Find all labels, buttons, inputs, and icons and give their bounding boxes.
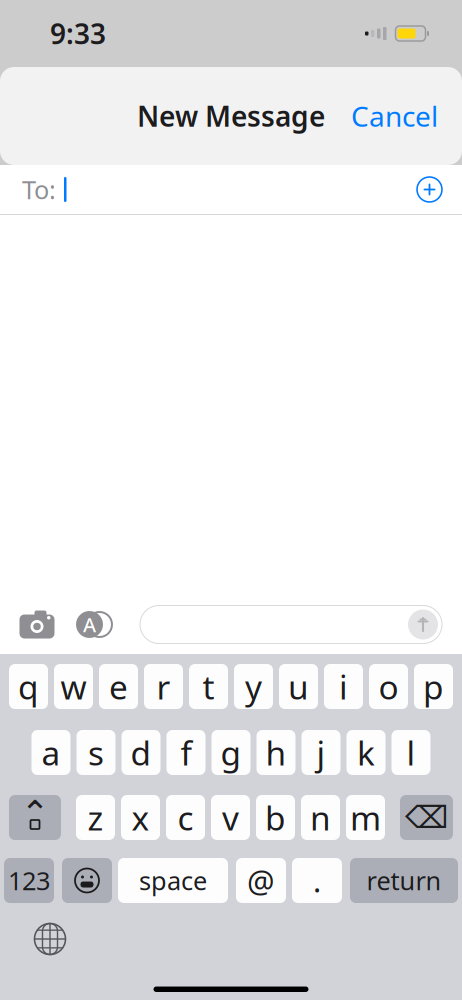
staticText: h xyxy=(265,730,286,775)
staticText: New Message xyxy=(137,97,325,135)
staticText: f xyxy=(180,730,191,775)
staticText: v xyxy=(222,795,239,840)
button[interactable]: Emoji xyxy=(62,858,112,903)
staticText: c xyxy=(177,795,193,840)
staticText: r xyxy=(156,664,170,709)
button[interactable]: g xyxy=(211,730,250,775)
button[interactable]: v xyxy=(211,795,250,840)
button[interactable]: d xyxy=(121,730,160,775)
button[interactable]: x xyxy=(121,795,160,840)
button[interactable]: space xyxy=(118,858,228,903)
button[interactable]: a xyxy=(31,730,70,775)
button[interactable]: Delete xyxy=(400,795,453,840)
staticText: w xyxy=(60,664,86,709)
staticText: e xyxy=(109,664,128,709)
button[interactable]: return xyxy=(350,858,458,903)
button[interactable]: p xyxy=(414,664,453,709)
staticText: b xyxy=(265,795,286,840)
staticText: p xyxy=(423,664,444,709)
button[interactable]: e xyxy=(99,664,138,709)
button[interactable]: Apps xyxy=(76,602,112,646)
staticText: 9:33 xyxy=(50,15,106,52)
staticText: 123 xyxy=(8,864,50,897)
button[interactable]: j xyxy=(301,730,340,775)
button[interactable]: k xyxy=(346,730,385,775)
staticText: g xyxy=(220,730,241,775)
button[interactable]: c xyxy=(166,795,205,840)
button[interactable]: b xyxy=(256,795,295,840)
staticText: return xyxy=(366,864,441,897)
button[interactable]: u xyxy=(279,664,318,709)
staticText: y xyxy=(245,664,262,709)
button[interactable]: s xyxy=(76,730,115,775)
button[interactable]: f xyxy=(166,730,205,775)
button[interactable]: Add contact xyxy=(410,170,449,209)
button[interactable]: t xyxy=(189,664,228,709)
button[interactable]: h xyxy=(256,730,295,775)
button[interactable]: Cancel xyxy=(339,83,450,149)
button[interactable]: y xyxy=(234,664,273,709)
button[interactable]: . xyxy=(292,858,342,903)
button[interactable]: z xyxy=(76,795,115,840)
staticText: . xyxy=(313,860,321,901)
button[interactable]: Next keyboard xyxy=(28,917,72,961)
staticText: @ xyxy=(247,860,275,901)
staticText: j xyxy=(316,730,325,775)
staticText: z xyxy=(87,795,103,840)
button[interactable]: i xyxy=(324,664,363,709)
button[interactable]: 123 xyxy=(4,858,54,903)
button[interactable]: Shift xyxy=(9,795,61,840)
button[interactable]: o xyxy=(369,664,408,709)
button[interactable]: Camera xyxy=(19,602,55,646)
button[interactable]: Send xyxy=(408,609,438,639)
staticText: ⌫ xyxy=(405,800,448,835)
staticText: m xyxy=(350,795,381,840)
staticText: x xyxy=(131,795,149,840)
staticText: o xyxy=(378,664,398,709)
button[interactable]: l xyxy=(391,730,430,775)
staticText: s xyxy=(88,730,104,775)
staticText: A xyxy=(83,611,96,638)
staticText: u xyxy=(288,664,309,709)
button[interactable]: q xyxy=(9,664,48,709)
staticText: i xyxy=(339,664,348,709)
staticText: k xyxy=(357,730,375,775)
staticText: ⌃ xyxy=(20,793,49,833)
staticText: space xyxy=(139,864,207,897)
button[interactable]: w xyxy=(54,664,93,709)
staticText: a xyxy=(41,730,60,775)
button[interactable]: n xyxy=(301,795,340,840)
staticText: t xyxy=(202,664,214,709)
staticText: l xyxy=(406,730,415,775)
staticText: d xyxy=(130,730,151,775)
button[interactable]: r xyxy=(144,664,183,709)
button[interactable]: m xyxy=(346,795,385,840)
button[interactable]: @ xyxy=(236,858,286,903)
staticText: n xyxy=(310,795,331,840)
staticText: Cancel xyxy=(351,97,438,135)
staticText: q xyxy=(18,664,39,709)
staticText: To: xyxy=(22,173,56,206)
